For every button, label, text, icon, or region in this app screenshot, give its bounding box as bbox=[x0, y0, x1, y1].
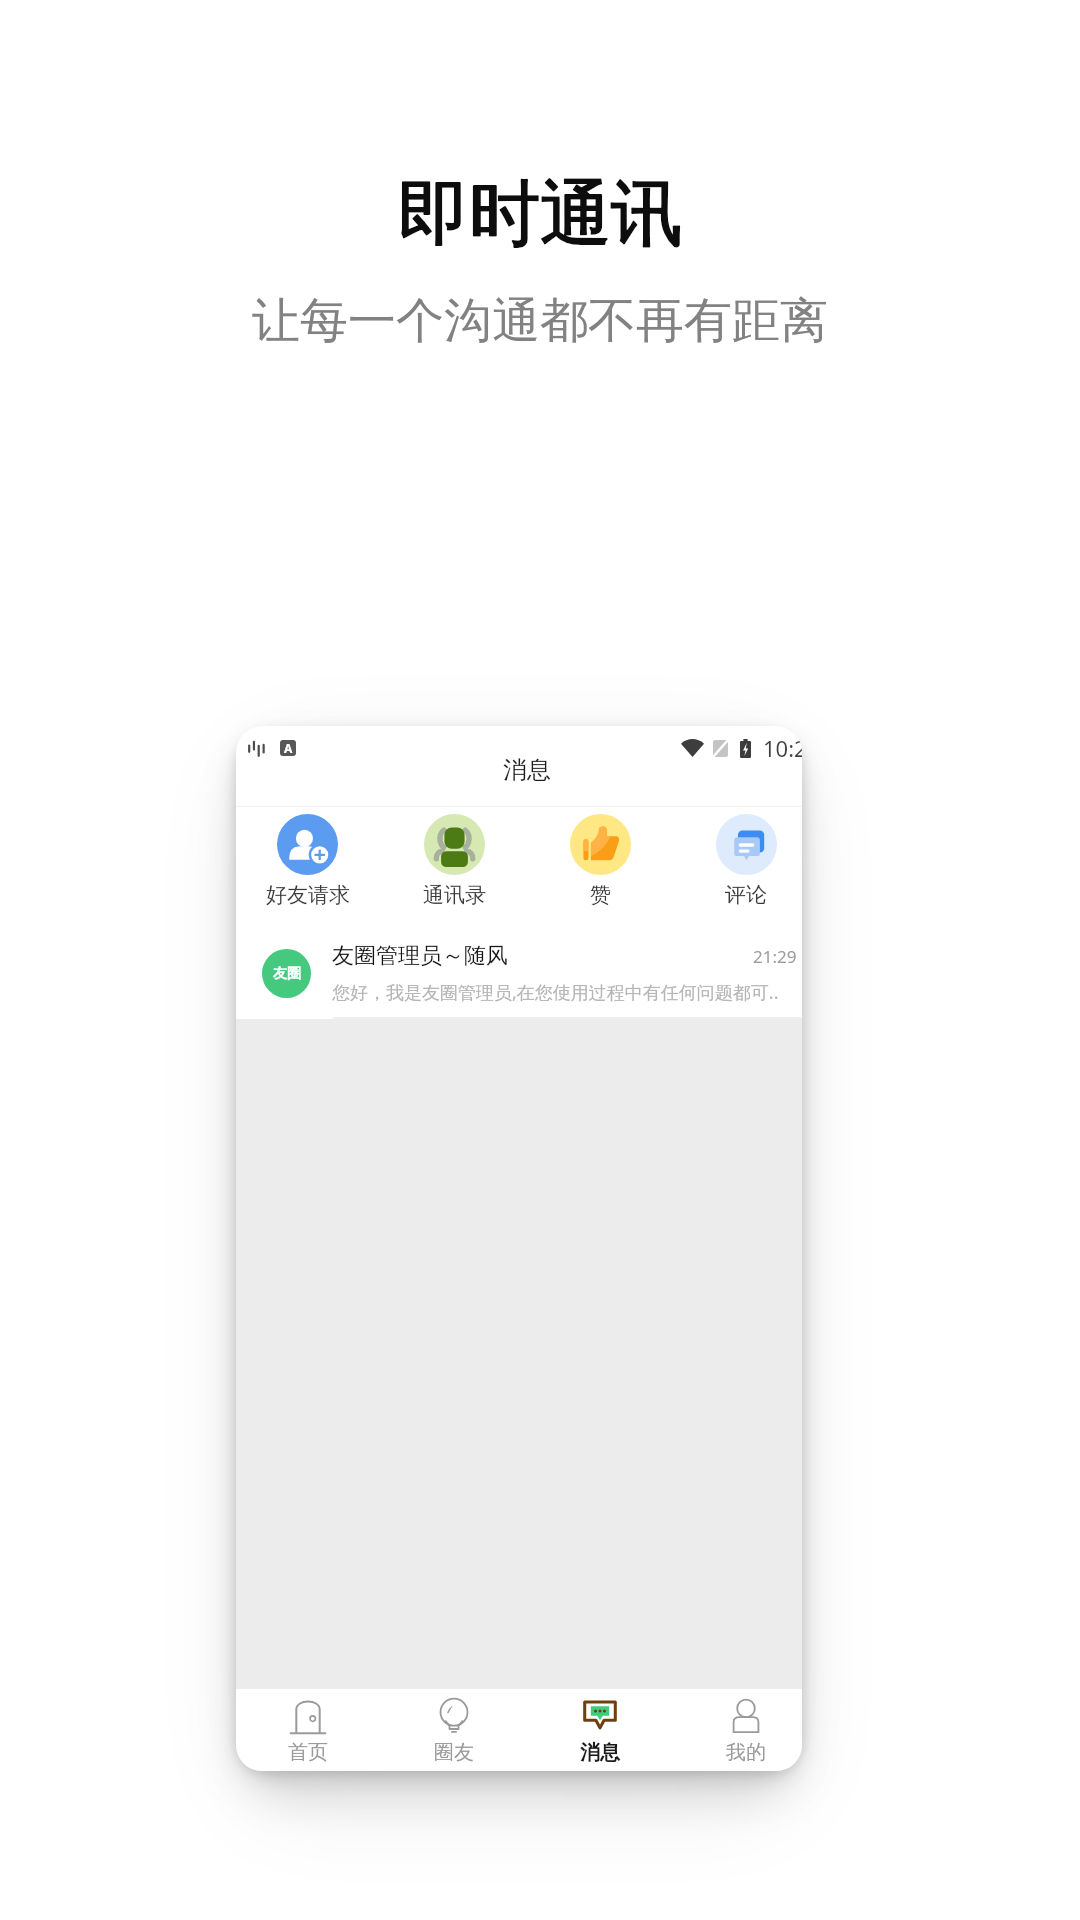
staticText: 您好，我是友圈管理员,在您使用过程中有任何问题都可.. bbox=[332, 980, 779, 1005]
button[interactable]: Home bbox=[236, 1689, 381, 1771]
staticText: 好友请求 bbox=[266, 882, 350, 908]
staticText: 让每一个沟通都不再有距离 bbox=[0, 291, 1080, 351]
button[interactable]: Profile bbox=[673, 1689, 802, 1771]
staticText: 即时通讯 bbox=[0, 170, 1080, 259]
staticText: 21:29 bbox=[753, 945, 797, 968]
button[interactable]: Friends bbox=[381, 1689, 527, 1771]
staticText: 友圈 bbox=[273, 965, 301, 983]
button[interactable]: 评论 bbox=[673, 807, 802, 930]
staticText: 消息 bbox=[503, 755, 551, 785]
staticText: 圈友 bbox=[434, 1740, 474, 1765]
staticText: A bbox=[284, 740, 293, 756]
staticText: 友圈管理员～随风 bbox=[332, 942, 508, 970]
staticText: 通讯录 bbox=[423, 882, 486, 908]
staticText: 消息 bbox=[580, 1740, 620, 1765]
staticText: 评论 bbox=[725, 882, 767, 908]
staticText: 首页 bbox=[288, 1740, 328, 1765]
button[interactable]: 通讯录 bbox=[381, 807, 527, 930]
staticText: 10:25 bbox=[763, 733, 802, 763]
button[interactable]: 友圈 bbox=[236, 930, 802, 1017]
staticText: 赞 bbox=[590, 882, 611, 908]
staticText: 即时通讯 bbox=[0, 170, 1080, 259]
button[interactable]: Messages bbox=[527, 1689, 673, 1771]
button[interactable]: 好友请求 bbox=[236, 807, 381, 930]
staticText: 我的 bbox=[726, 1740, 766, 1765]
button[interactable]: 赞 bbox=[527, 807, 673, 930]
